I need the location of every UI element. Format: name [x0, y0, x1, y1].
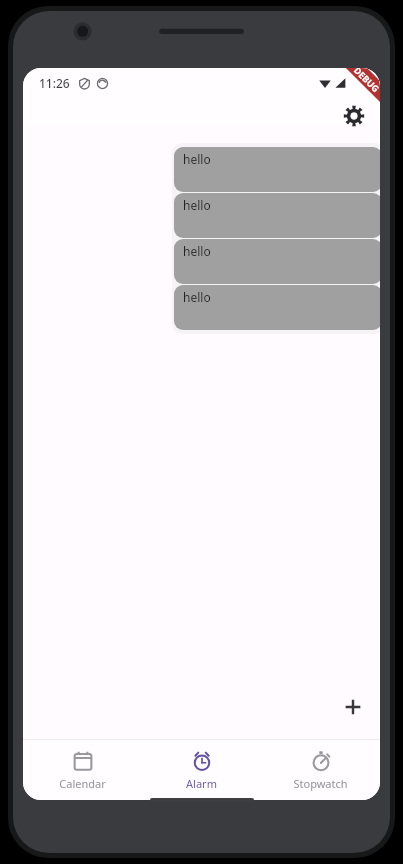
- button[interactable]: hello: [174, 193, 380, 238]
- staticText: DEBUG: [352, 68, 380, 94]
- staticText: Alarm: [186, 776, 217, 791]
- button[interactable]: Alarm: [142, 744, 261, 797]
- staticText: hello: [183, 197, 211, 213]
- staticText: hello: [183, 151, 211, 167]
- staticText: PM: [171, 136, 232, 190]
- staticText: hello: [183, 289, 211, 305]
- staticText: Calendar: [59, 776, 106, 791]
- button[interactable]: hello: [174, 285, 380, 330]
- button[interactable]: Add alarm: [331, 685, 375, 729]
- staticText: hello: [183, 243, 211, 259]
- button[interactable]: hello: [174, 239, 380, 284]
- button[interactable]: Settings: [334, 96, 374, 136]
- button[interactable]: Calendar: [23, 744, 142, 797]
- button[interactable]: hello: [174, 147, 380, 192]
- staticText: Stopwatch: [293, 776, 348, 791]
- button[interactable]: Stopwatch: [261, 744, 380, 797]
- staticText: 11:26: [39, 75, 70, 91]
- staticText: Mar: [186, 196, 217, 218]
